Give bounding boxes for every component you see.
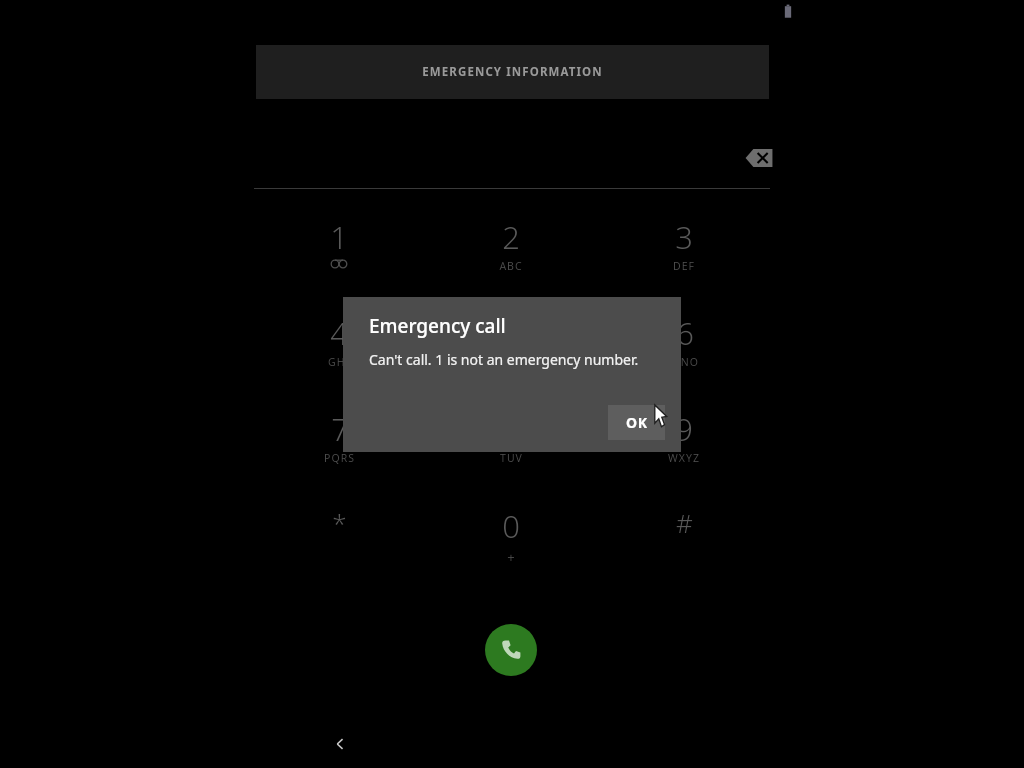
staticText: PQRS (324, 451, 355, 465)
button[interactable]: * (264, 495, 414, 581)
staticText: EMERGENCY INFORMATION (422, 64, 603, 80)
button[interactable]: OK (608, 405, 665, 440)
staticText: 5 (502, 312, 520, 354)
staticText: 7 (331, 408, 349, 450)
staticText: GHI (328, 355, 350, 369)
button[interactable]: Back (326, 730, 354, 758)
staticText: ABC (499, 259, 523, 273)
staticText: TUV (500, 451, 523, 465)
button[interactable]: 3 (609, 206, 759, 292)
button[interactable]: EMERGENCY INFORMATION (256, 45, 769, 99)
staticText: 2 (502, 216, 520, 258)
button[interactable]: 1 (264, 206, 414, 292)
button[interactable]: 5 (436, 302, 586, 388)
staticText: 1 (330, 216, 348, 258)
button[interactable]: 0 (436, 495, 586, 581)
button[interactable]: 4 (264, 302, 414, 388)
button[interactable]: 9 (609, 398, 759, 484)
button[interactable]: 8 (436, 398, 586, 484)
other: Battery (781, 3, 795, 19)
staticText: + (507, 548, 516, 566)
staticText: 0 (502, 505, 520, 547)
staticText: 6 (676, 312, 694, 354)
button[interactable]: Call (485, 624, 537, 676)
staticText: # (676, 505, 693, 540)
button[interactable]: # (609, 495, 759, 581)
staticText: DEF (673, 259, 695, 273)
staticText: OK (626, 413, 648, 432)
button[interactable]: 6 (609, 302, 759, 388)
staticText: * (332, 505, 347, 540)
staticText: WXYZ (668, 451, 700, 465)
staticText: 3 (675, 216, 693, 258)
button[interactable]: 2 (436, 206, 586, 292)
button[interactable]: Backspace (745, 146, 773, 170)
staticText: Emergency call (369, 313, 506, 339)
staticText: Can't call. 1 is not an emergency number… (369, 350, 639, 369)
button[interactable]: 7 (264, 398, 414, 484)
staticText: JKL (502, 355, 520, 369)
staticText: MNO (670, 355, 699, 369)
staticText: 4 (330, 312, 348, 354)
staticText: 9 (675, 408, 693, 450)
